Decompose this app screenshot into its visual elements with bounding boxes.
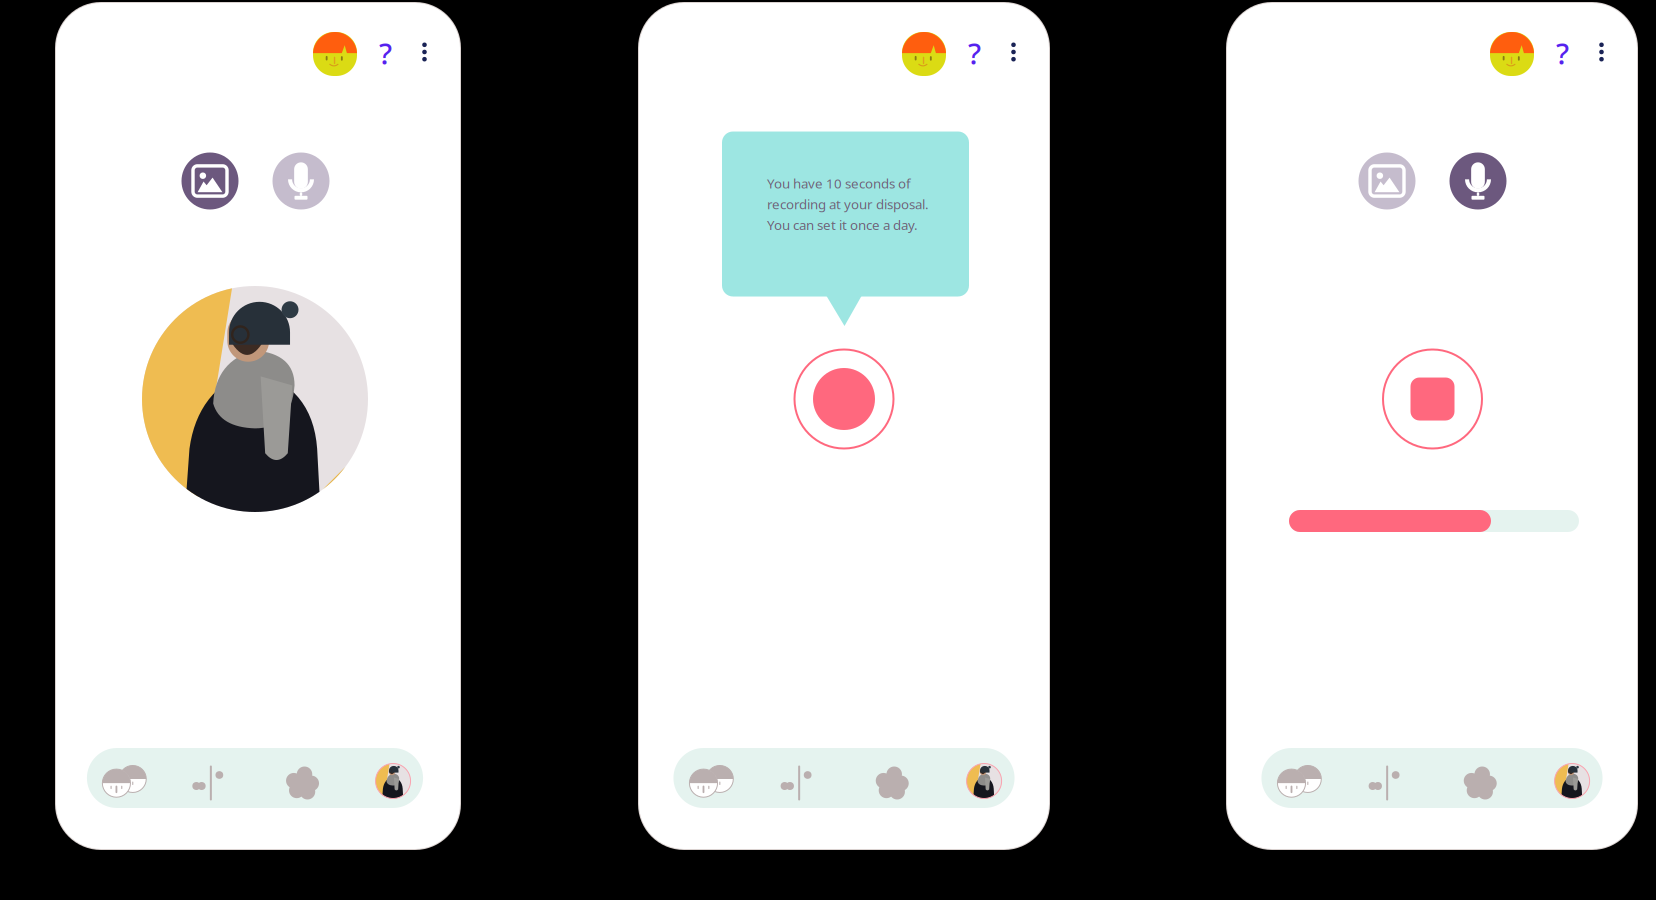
button[interactable]: Profile [897, 27, 951, 81]
button[interactable]: Voice [272, 152, 329, 209]
staticText: You have 10 seconds of [767, 174, 911, 192]
staticText: ? [1556, 33, 1569, 72]
button[interactable]: More options [996, 25, 1030, 79]
button[interactable]: Photo [1358, 152, 1415, 209]
staticText: ? [968, 33, 981, 72]
staticText: recording at your disposal. [767, 195, 929, 213]
button[interactable]: Mixer [180, 753, 236, 813]
button[interactable]: Mixer [768, 753, 824, 813]
button[interactable]: Discover [1452, 753, 1508, 813]
button[interactable]: Help [1545, 26, 1579, 80]
button[interactable]: More options [407, 25, 441, 79]
button[interactable]: Stop recording [1382, 348, 1483, 449]
button[interactable]: You [365, 751, 421, 811]
button[interactable]: Discover [864, 753, 920, 813]
button[interactable]: Profile [308, 27, 362, 81]
button[interactable]: Friends [679, 751, 743, 811]
button[interactable]: Photo [181, 152, 238, 209]
staticText: ? [379, 33, 392, 72]
button[interactable]: Discover [274, 753, 330, 813]
button[interactable]: Mixer [1356, 753, 1412, 813]
staticText: You can set it once a day. [767, 216, 918, 234]
button[interactable]: Voice [1449, 152, 1506, 209]
button[interactable]: More options [1584, 25, 1618, 79]
button[interactable]: Profile [1485, 27, 1539, 81]
button[interactable]: Help [368, 26, 402, 80]
button[interactable]: You [956, 751, 1012, 811]
button[interactable]: You [1544, 751, 1600, 811]
button[interactable]: Friends [92, 751, 156, 811]
button[interactable]: Help [957, 26, 991, 80]
button[interactable]: Friends [1267, 751, 1331, 811]
button[interactable]: Start recording [793, 348, 894, 449]
